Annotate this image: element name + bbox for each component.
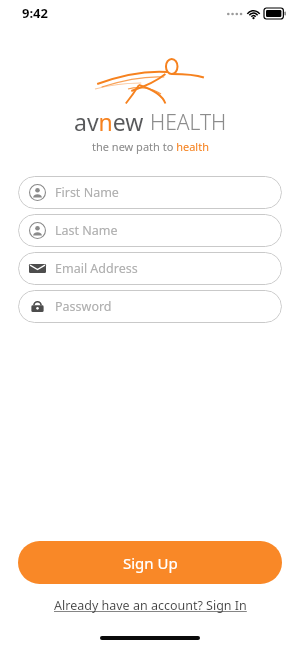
staticText: HEALTH bbox=[150, 108, 227, 137]
button[interactable]: Sign Up bbox=[18, 541, 282, 584]
staticText: Email Address bbox=[55, 260, 138, 277]
button[interactable]: Password bbox=[18, 290, 282, 323]
button[interactable]: Last Name bbox=[18, 214, 282, 247]
button[interactable]: Already have an account? Sign In bbox=[0, 597, 300, 614]
staticText: First Name bbox=[55, 184, 119, 201]
button[interactable]: First Name bbox=[18, 176, 282, 209]
staticText: avnew bbox=[74, 106, 144, 137]
staticText: 9:42 bbox=[22, 4, 48, 22]
staticText: Sign Up bbox=[123, 553, 178, 573]
staticText: the new path to health bbox=[92, 139, 209, 154]
staticText: Last Name bbox=[55, 222, 118, 239]
staticText: Password bbox=[55, 298, 112, 315]
button[interactable]: Email Address bbox=[18, 252, 282, 285]
staticText: Already have an account? Sign In bbox=[54, 597, 247, 614]
